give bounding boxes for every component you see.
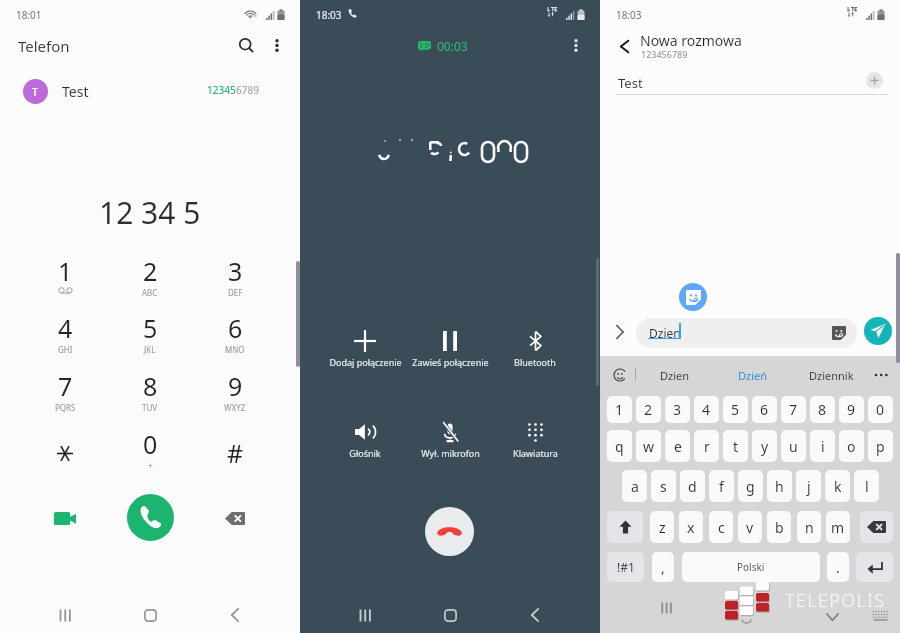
button[interactable]: n: [797, 511, 821, 543]
button[interactable]: Dodaj połączenie: [320, 322, 410, 366]
button[interactable]: Klawiatura: [490, 413, 580, 457]
button[interactable]: 6: [190, 311, 280, 367]
button[interactable]: !#1: [607, 552, 644, 582]
button[interactable]: Recents: [35, 600, 95, 630]
button[interactable]: Polski: [682, 552, 820, 582]
button[interactable]: End call: [425, 507, 474, 556]
button[interactable]: 7: [781, 396, 806, 423]
button[interactable]: 0: [105, 427, 195, 483]
button[interactable]: g: [738, 470, 763, 502]
button[interactable]: ,: [652, 552, 674, 582]
button[interactable]: Add recipient: [866, 72, 883, 89]
button[interactable]: Wył. mikrofon: [405, 413, 495, 457]
button[interactable]: 2: [105, 254, 195, 310]
button[interactable]: 3: [190, 254, 280, 310]
button[interactable]: v: [738, 511, 762, 543]
button[interactable]: Recents: [646, 594, 686, 622]
button[interactable]: .: [827, 552, 849, 582]
button[interactable]: Home: [120, 600, 180, 630]
button[interactable]: 4: [694, 396, 719, 423]
button[interactable]: 1: [20, 254, 110, 310]
button[interactable]: Dzien: [636, 318, 857, 348]
staticText: ,: [661, 558, 665, 577]
staticText: e: [674, 437, 682, 456]
button[interactable]: 5: [105, 311, 195, 367]
button[interactable]: [20, 427, 110, 483]
button[interactable]: Home: [420, 600, 480, 630]
button[interactable]: f: [709, 470, 734, 502]
button[interactable]: 4: [20, 311, 110, 367]
staticText: f: [719, 477, 724, 496]
button[interactable]: q: [607, 430, 632, 462]
button[interactable]: Stickers: [679, 283, 707, 311]
button[interactable]: Test: [600, 68, 900, 94]
staticText: +: [148, 460, 153, 471]
button[interactable]: Emoji suggestions: [607, 362, 633, 388]
button[interactable]: 5: [723, 396, 748, 423]
button[interactable]: Głośnik: [320, 413, 410, 457]
staticText: 18:03: [316, 8, 342, 22]
button[interactable]: 9: [839, 396, 864, 423]
button[interactable]: Back: [610, 32, 638, 60]
button[interactable]: t: [723, 430, 748, 462]
button[interactable]: Back: [505, 600, 565, 630]
button[interactable]: p: [868, 430, 893, 462]
button[interactable]: More options: [262, 30, 290, 60]
staticText: JKL: [144, 344, 156, 355]
button[interactable]: 0: [868, 396, 893, 423]
button[interactable]: Keyboard layout: [866, 604, 894, 626]
button[interactable]: o: [839, 430, 864, 462]
button[interactable]: Backspace: [860, 511, 893, 543]
button[interactable]: x: [679, 511, 703, 543]
button[interactable]: a: [622, 470, 647, 502]
button[interactable]: Shift: [607, 511, 643, 543]
staticText: Polski: [737, 560, 765, 574]
button[interactable]: b: [767, 511, 791, 543]
button[interactable]: z: [650, 511, 674, 543]
staticText: 9: [847, 400, 856, 419]
button[interactable]: Search: [232, 30, 262, 60]
button[interactable]: Dzień: [723, 362, 783, 388]
button[interactable]: 8: [105, 369, 195, 425]
button[interactable]: 7: [20, 369, 110, 425]
button[interactable]: w: [636, 430, 661, 462]
button[interactable]: y: [752, 430, 777, 462]
button[interactable]: Expand toolbar: [608, 322, 632, 342]
button[interactable]: i: [810, 430, 835, 462]
button[interactable]: Backspace: [190, 494, 280, 542]
button[interactable]: #: [190, 427, 280, 483]
button[interactable]: 6: [752, 396, 777, 423]
button[interactable]: Zawieś połączenie: [405, 322, 495, 366]
button[interactable]: h: [767, 470, 792, 502]
button[interactable]: 2: [636, 396, 661, 423]
button[interactable]: Call: [127, 494, 174, 541]
button[interactable]: k: [825, 470, 850, 502]
button[interactable]: j: [796, 470, 821, 502]
button[interactable]: u: [781, 430, 806, 462]
button[interactable]: Dzien: [645, 362, 705, 388]
button[interactable]: Recents: [335, 600, 395, 630]
button[interactable]: More suggestions: [868, 362, 894, 388]
staticText: 00:03: [437, 38, 468, 54]
button[interactable]: Back: [205, 600, 265, 630]
button[interactable]: Video call: [20, 494, 110, 542]
button[interactable]: 3: [665, 396, 690, 423]
button[interactable]: c: [709, 511, 733, 543]
button[interactable]: m: [826, 511, 850, 543]
button[interactable]: Dziennik: [796, 362, 866, 388]
button[interactable]: r: [694, 430, 719, 462]
button[interactable]: Enter: [856, 552, 893, 582]
staticText: 1: [615, 400, 624, 419]
button[interactable]: e: [665, 430, 690, 462]
button[interactable]: s: [651, 470, 676, 502]
button[interactable]: 8: [810, 396, 835, 423]
button[interactable]: l: [854, 470, 879, 502]
button[interactable]: Bluetooth: [490, 322, 580, 366]
button[interactable]: 1: [607, 396, 632, 423]
button[interactable]: 9: [190, 369, 280, 425]
button[interactable]: d: [680, 470, 705, 502]
button[interactable]: Send: [864, 317, 892, 345]
button[interactable]: More options: [561, 30, 589, 60]
button[interactable]: T: [0, 72, 300, 108]
button[interactable]: Hide keyboard: [816, 606, 848, 628]
